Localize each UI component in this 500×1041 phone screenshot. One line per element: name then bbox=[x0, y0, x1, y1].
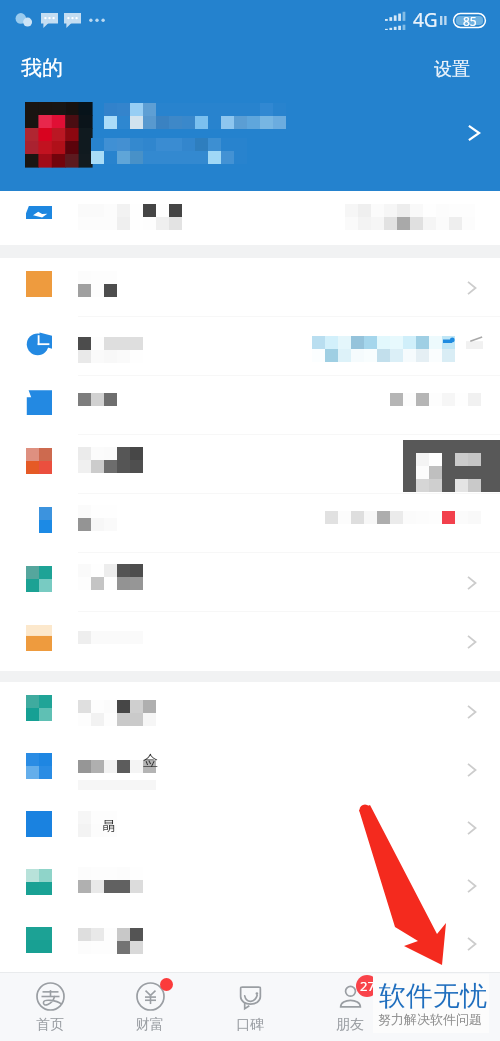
button[interactable] bbox=[0, 856, 500, 914]
button[interactable] bbox=[0, 494, 500, 553]
button[interactable]: 设置 bbox=[434, 58, 470, 81]
button[interactable]: 口碑 bbox=[200, 973, 300, 1041]
staticText: 首页 bbox=[36, 1016, 64, 1034]
button[interactable]: 佥 bbox=[0, 740, 500, 798]
staticText: 朋友 bbox=[336, 1016, 364, 1034]
button[interactable]: 财富 bbox=[100, 973, 200, 1041]
button[interactable]: 27 bbox=[300, 973, 400, 1041]
staticText: 我的 bbox=[21, 55, 63, 81]
button[interactable] bbox=[0, 258, 500, 317]
staticText: 85 bbox=[463, 13, 477, 28]
button[interactable] bbox=[0, 914, 500, 972]
other: Open profile bbox=[466, 123, 482, 143]
staticText: 𣇵 bbox=[102, 819, 116, 833]
button[interactable] bbox=[0, 682, 500, 740]
staticText: 软件无忧 bbox=[379, 979, 487, 1013]
button[interactable] bbox=[0, 191, 500, 245]
staticText: 27 bbox=[360, 977, 375, 995]
button[interactable]: 我的 bbox=[21, 55, 63, 81]
staticText: 4G bbox=[413, 7, 438, 33]
button[interactable] bbox=[0, 612, 500, 671]
staticText: 努力解决软件问题 bbox=[378, 1011, 482, 1027]
button[interactable] bbox=[0, 553, 500, 612]
button[interactable] bbox=[0, 435, 500, 494]
staticText: 设置 bbox=[434, 58, 470, 81]
button[interactable]: 首页 bbox=[0, 973, 100, 1041]
button[interactable] bbox=[0, 317, 500, 376]
staticText: 佥 bbox=[143, 752, 158, 771]
staticText: 财富 bbox=[136, 1016, 164, 1034]
button[interactable]: 𣇵 bbox=[0, 798, 500, 856]
button[interactable]: Open profile bbox=[0, 96, 500, 174]
button[interactable] bbox=[0, 376, 500, 435]
staticText: 口碑 bbox=[236, 1016, 264, 1034]
